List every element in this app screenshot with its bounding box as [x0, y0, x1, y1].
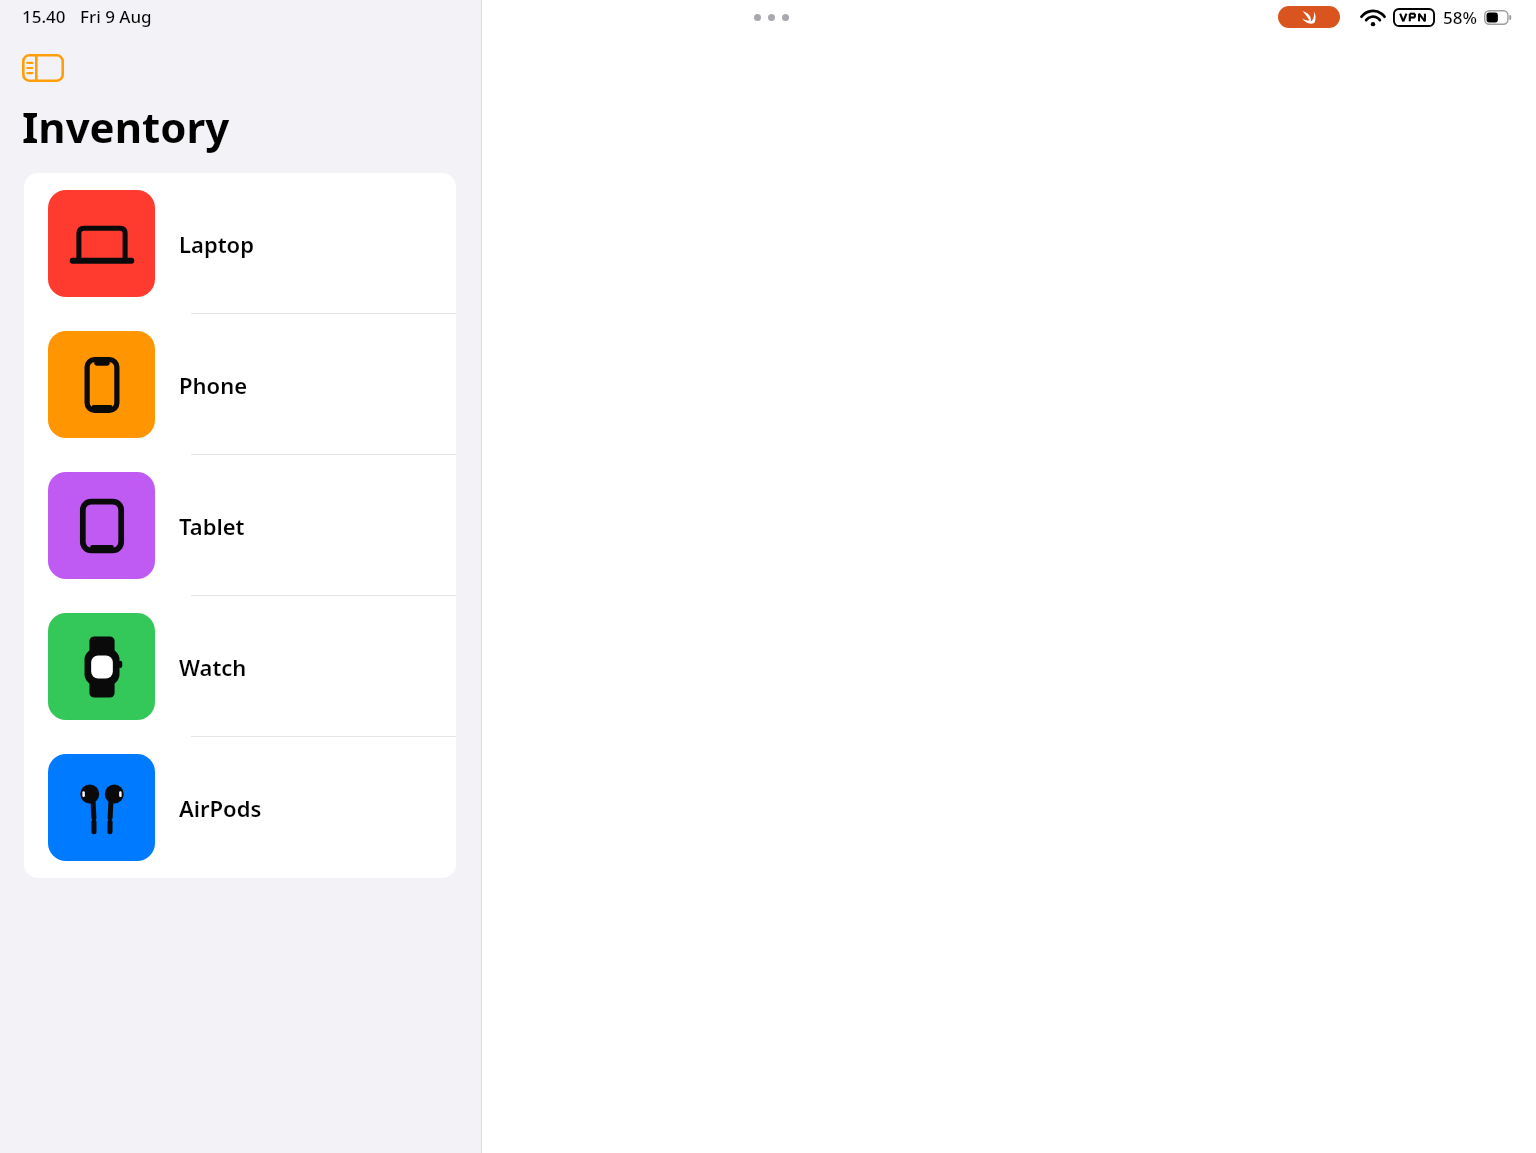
- button[interactable]: Multitasking controls: [748, 8, 795, 27]
- button[interactable]: AirPods: [24, 737, 456, 878]
- staticText: Laptop: [179, 229, 254, 259]
- button[interactable]: Swift app recording: [1278, 6, 1340, 28]
- staticText: 15.40: [22, 5, 66, 28]
- button[interactable]: Watch: [24, 596, 456, 737]
- staticText: Phone: [179, 370, 248, 400]
- staticText: Tablet: [179, 511, 245, 541]
- button[interactable]: Tablet: [24, 455, 456, 596]
- staticText: Inventory: [22, 98, 230, 155]
- staticText: 58%: [1443, 6, 1477, 29]
- button[interactable]: Toggle Sidebar: [16, 48, 76, 88]
- staticText: Watch: [179, 652, 247, 682]
- button[interactable]: Laptop: [24, 173, 456, 314]
- staticText: Fri 9 Aug: [80, 5, 152, 28]
- staticText: AirPods: [179, 793, 262, 823]
- button[interactable]: Phone: [24, 314, 456, 455]
